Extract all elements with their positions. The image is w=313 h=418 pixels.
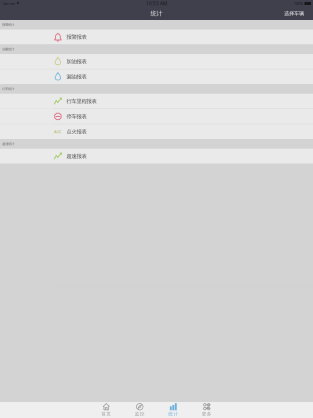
button[interactable]: 停车报表 [0, 109, 313, 124]
button[interactable]: 超速报表 [0, 149, 313, 163]
staticText: 报警统计 [2, 23, 14, 27]
staticText: 点火报表 [66, 128, 86, 135]
staticText: 选择车辆 [284, 10, 304, 17]
staticText: 行车统计 [2, 87, 14, 91]
button[interactable]: 监控 [123, 402, 156, 418]
button[interactable]: 报警报表 [0, 30, 313, 44]
button[interactable]: ACC [0, 124, 313, 139]
staticText: 漏油报表 [66, 73, 86, 80]
staticText: 统计 [168, 411, 178, 417]
staticText: 更多 [202, 411, 212, 417]
button[interactable]: 加油报表 [0, 54, 313, 69]
staticText: Carrier [2, 1, 15, 6]
staticText: 停车报表 [66, 113, 86, 120]
button[interactable]: 首页 [89, 402, 123, 418]
staticText: 统计 [150, 10, 162, 17]
staticText: 超速统计 [2, 142, 14, 146]
staticText: 100% [294, 1, 303, 6]
button[interactable]: 行车里程报表 [0, 94, 313, 108]
staticText: 加油报表 [66, 58, 86, 65]
staticText: 报警报表 [66, 34, 86, 40]
staticText: 监控 [135, 411, 145, 417]
button[interactable]: 统计 [156, 402, 190, 418]
staticText: 超速报表 [66, 153, 86, 159]
button[interactable]: 更多 [190, 402, 223, 418]
button[interactable]: 漏油报表 [0, 69, 313, 84]
staticText: 行车里程报表 [66, 98, 96, 104]
button[interactable]: 选择车辆 [280, 7, 308, 20]
staticText: 首页 [101, 411, 111, 417]
staticText: 油量统计 [2, 47, 14, 51]
staticText: 10:53 AM [146, 0, 167, 7]
staticText: ACC [54, 129, 62, 134]
